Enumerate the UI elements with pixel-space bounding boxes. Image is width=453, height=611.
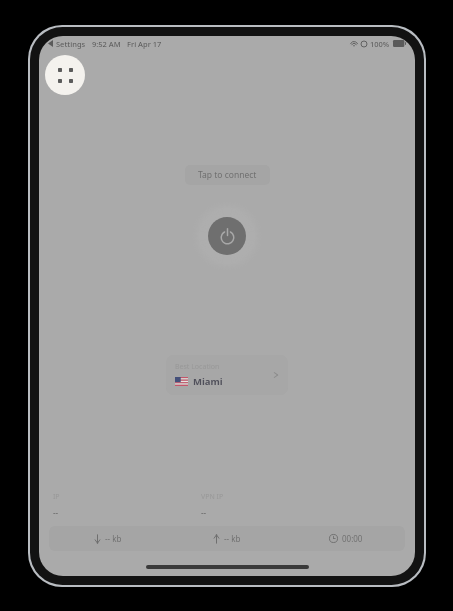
staticText: Tap to connect: [198, 169, 257, 181]
button[interactable]: Best Location: [166, 355, 288, 395]
staticText: -- kb: [224, 533, 241, 544]
staticText: -- kb: [105, 533, 122, 544]
staticText: 100%: [370, 39, 390, 49]
button[interactable]: Apps menu: [45, 55, 85, 95]
staticText: Settings: [56, 39, 86, 49]
staticText: Fri Apr 17: [127, 39, 162, 49]
button[interactable]: Tap to connect: [185, 165, 270, 185]
staticText: 9:52 AM: [92, 39, 121, 49]
button[interactable]: Connect VPN: [192, 201, 262, 271]
staticText: --: [201, 507, 207, 518]
staticText: Best Location: [175, 362, 220, 372]
staticText: --: [53, 507, 59, 518]
staticText: IP: [53, 492, 60, 502]
staticText: VPN IP: [201, 492, 224, 502]
staticText: Miami: [193, 375, 223, 388]
staticText: 00:00: [342, 533, 363, 544]
